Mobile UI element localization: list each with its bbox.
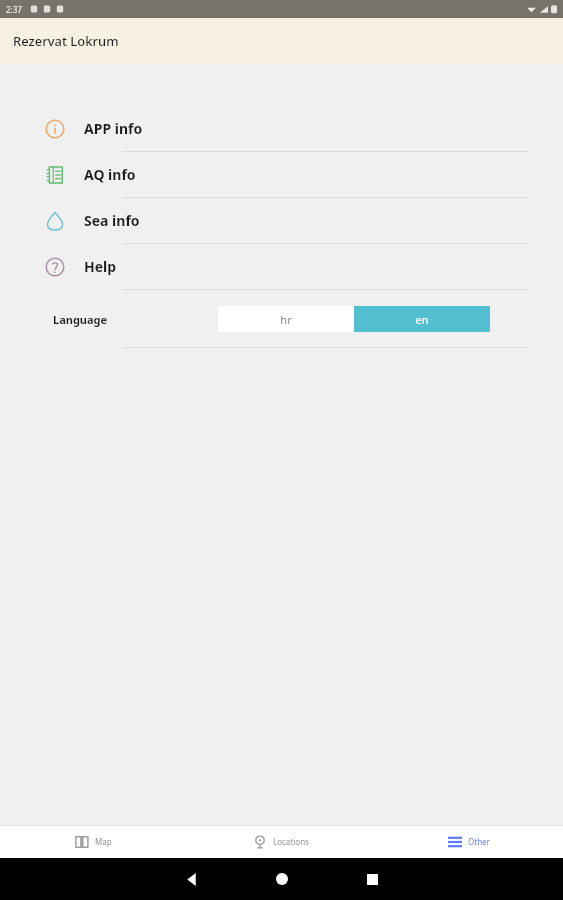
other: Help xyxy=(45,257,65,277)
staticText: Map xyxy=(95,836,112,847)
staticText: Language xyxy=(53,312,108,327)
button[interactable]: AQ info xyxy=(0,152,563,197)
other: AQ info xyxy=(45,165,65,185)
button[interactable]: en xyxy=(354,306,490,332)
other: Back xyxy=(186,873,199,886)
staticText: Locations xyxy=(273,836,309,847)
staticText: en xyxy=(415,312,429,327)
other: Sea info xyxy=(45,211,65,231)
button[interactable]: Other xyxy=(375,825,563,858)
other: Home xyxy=(276,873,288,885)
staticText: AQ info xyxy=(84,165,136,184)
button[interactable]: Map xyxy=(0,825,187,858)
staticText: 2:37 xyxy=(6,4,22,15)
other: Info xyxy=(45,119,65,139)
staticText: hr xyxy=(280,312,292,327)
staticText: APP info xyxy=(84,119,143,138)
staticText: Other xyxy=(468,836,490,847)
button[interactable]: Help xyxy=(0,244,563,289)
button[interactable]: Sea info xyxy=(0,198,563,243)
staticText: Help xyxy=(84,257,117,276)
button[interactable]: Info xyxy=(0,106,563,151)
button[interactable]: Locations xyxy=(187,825,375,858)
staticText: Rezervat Lokrum xyxy=(13,32,119,50)
button[interactable]: hr xyxy=(218,306,354,332)
staticText: Sea info xyxy=(84,211,140,230)
